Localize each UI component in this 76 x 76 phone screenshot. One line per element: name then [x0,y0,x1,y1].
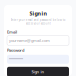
staticText: Email [7,29,17,34]
button[interactable]: Sign in [7,67,69,76]
staticText: Sign in [31,69,44,74]
staticText: Sign in [29,10,46,17]
button[interactable]: yourname@gmail.com [7,35,69,45]
staticText: Enter your email and password below to a… [10,18,65,25]
staticText: yourname@gmail.com [9,38,50,43]
button[interactable]: Password [7,55,69,64]
staticText: •••••••••••••• [9,57,23,61]
staticText: Password [7,47,24,53]
